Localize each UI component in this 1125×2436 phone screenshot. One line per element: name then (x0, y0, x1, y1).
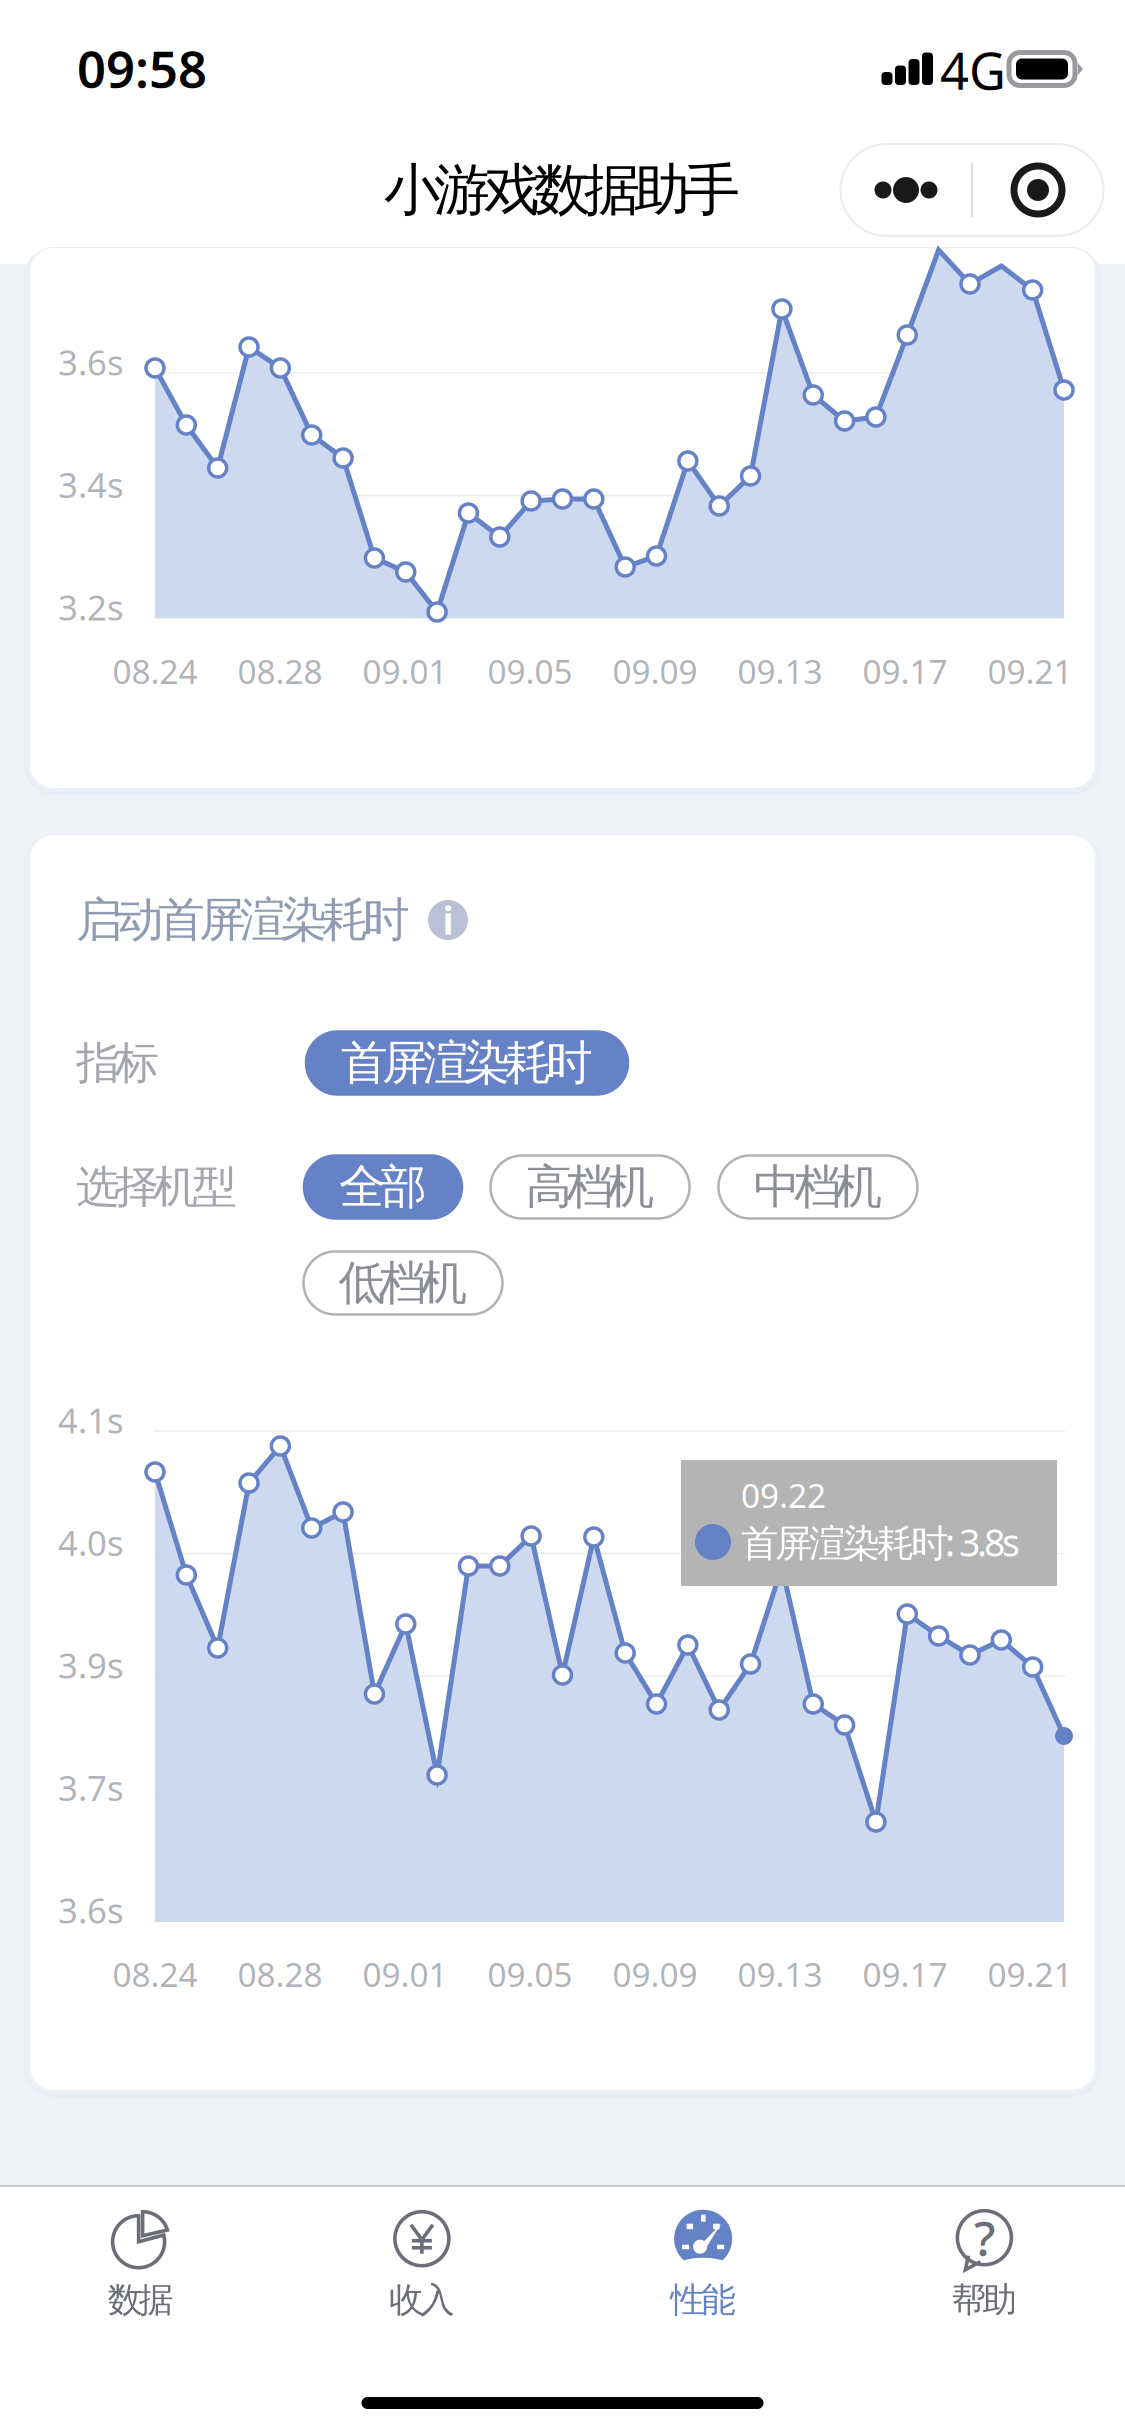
staticText: 09.09 (612, 649, 697, 693)
staticText: 数据 (108, 2279, 174, 2321)
staticText: 09.22 (741, 1473, 826, 1517)
staticText: 08.24 (112, 1952, 197, 1996)
staticText: 4.0s (58, 1519, 124, 1565)
staticText: 09.17 (862, 1952, 947, 1996)
button[interactable]: Info (426, 898, 470, 942)
staticText: 3.2s (58, 584, 124, 630)
staticText: 指标 (76, 1036, 159, 1090)
staticText: 09.09 (612, 1952, 697, 1996)
button[interactable]: 首屏渲染耗时 (306, 1031, 628, 1094)
staticText: 09.05 (487, 649, 572, 693)
staticText: 3.9s (58, 1642, 124, 1688)
staticText: 08.28 (237, 649, 322, 693)
staticText: 首屏渲染耗时 (341, 1034, 593, 1092)
staticText: i (442, 895, 453, 945)
staticText: 09.17 (862, 649, 947, 693)
button[interactable]: 数据 (0, 2189, 281, 2343)
staticText: 首屏渲染耗时: 3.8s (741, 1517, 1020, 1567)
staticText: 启动首屏渲染耗时 (76, 891, 410, 949)
staticText: 全部 (339, 1158, 427, 1216)
button[interactable]: 收入 (281, 2189, 562, 2343)
staticText: 09.13 (737, 1952, 822, 1996)
button[interactable]: Close (972, 144, 1103, 236)
staticText: 3.6s (58, 339, 124, 385)
staticText: 收入 (389, 2279, 455, 2321)
staticText: 性能 (670, 2279, 736, 2321)
staticText: 09.21 (987, 1952, 1072, 1996)
staticText: 3.7s (58, 1764, 124, 1810)
staticText: 09.21 (987, 649, 1072, 693)
button[interactable]: 全部 (304, 1155, 462, 1218)
button[interactable]: 中档机 (718, 1155, 917, 1218)
staticText: 08.28 (237, 1952, 322, 1996)
staticText: 4.1s (58, 1397, 124, 1443)
staticText: 3.4s (58, 461, 124, 507)
button[interactable]: 低档机 (303, 1251, 502, 1314)
staticText: 09.05 (487, 1952, 572, 1996)
staticText: 小游戏数据助手 (384, 156, 740, 224)
button[interactable]: ? (844, 2189, 1125, 2343)
staticText: 09.01 (362, 649, 447, 693)
staticText: 4G (940, 36, 1006, 104)
staticText: 09.13 (737, 649, 822, 693)
staticText: 高档机 (525, 1158, 654, 1216)
staticText: ? (974, 2206, 995, 2269)
staticText: 3.6s (58, 1887, 124, 1933)
staticText: 低档机 (338, 1254, 467, 1312)
staticText: 08.24 (112, 649, 197, 693)
staticText: 09.01 (362, 1952, 447, 1996)
staticText: 中档机 (753, 1158, 882, 1216)
button[interactable]: More (840, 144, 971, 236)
staticText: 09:58 (77, 34, 207, 102)
staticText: 选择机型 (76, 1160, 237, 1214)
button[interactable]: 性能 (562, 2189, 844, 2343)
button[interactable]: 高档机 (490, 1155, 689, 1218)
staticText: 帮助 (951, 2279, 1017, 2321)
